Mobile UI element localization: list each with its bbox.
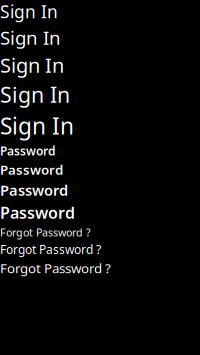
staticText: Sign In [0, 52, 64, 78]
staticText: Forgot Password ? [0, 225, 91, 239]
staticText: Sign In [0, 25, 61, 50]
staticText: Forgot Password ? [0, 259, 111, 277]
staticText: Sign In [0, 80, 70, 109]
staticText: Password [0, 202, 75, 223]
staticText: Sign In [0, 111, 74, 141]
staticText: Password [0, 143, 56, 159]
staticText: Sign In [0, 0, 58, 23]
staticText: Password [0, 180, 68, 200]
staticText: Password [0, 161, 63, 178]
staticText: Forgot Password ? [0, 241, 101, 257]
